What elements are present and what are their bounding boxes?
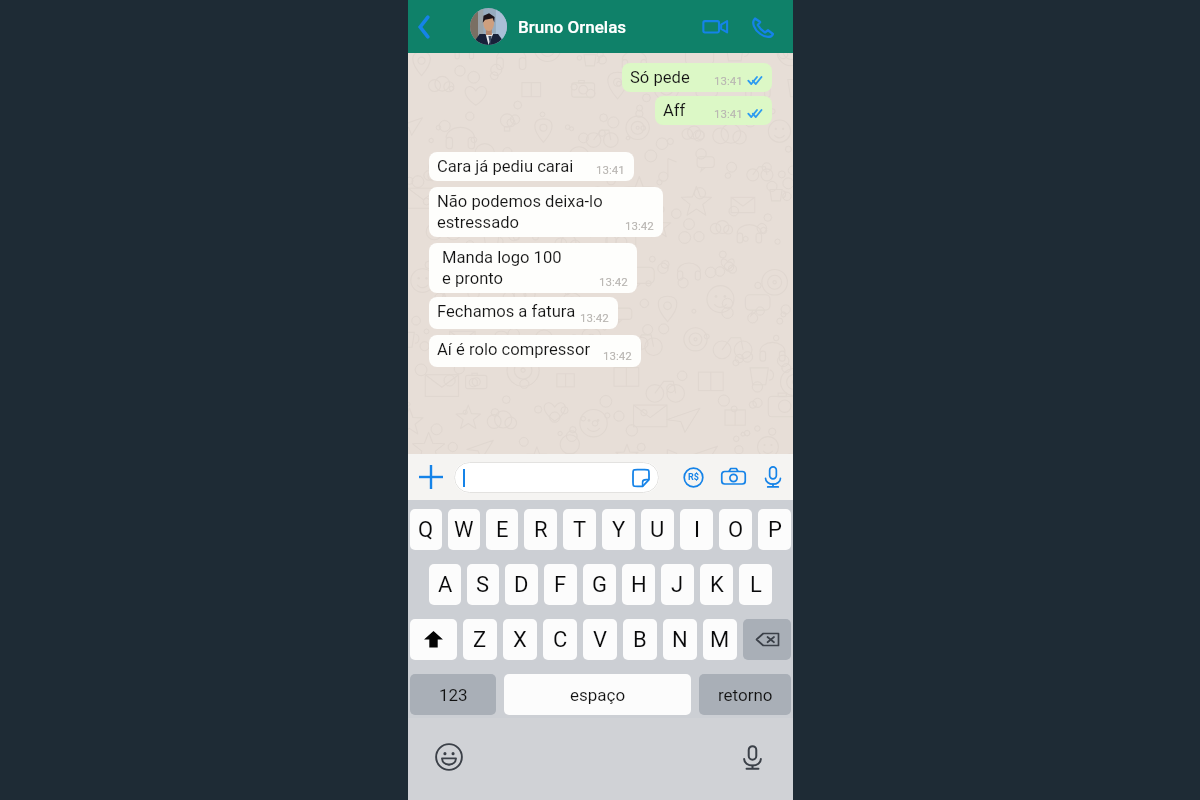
button[interactable]: Voice call (739, 0, 785, 53)
button[interactable]: Q (410, 509, 442, 550)
button[interactable]: V (583, 619, 617, 660)
button[interactable]: Z (463, 619, 497, 660)
button[interactable]: D (505, 564, 538, 605)
staticText: D (514, 572, 529, 598)
staticText: Cara já pediu carai (437, 157, 574, 176)
staticText: Y (612, 517, 626, 543)
button[interactable]: Aff (655, 96, 772, 125)
button[interactable]: L (739, 564, 772, 605)
staticText: Só pede (630, 68, 690, 87)
staticText: T (573, 517, 587, 543)
staticText: 13:42 (603, 340, 632, 353)
staticText: F (554, 572, 567, 598)
button[interactable]: N (663, 619, 697, 660)
staticText: C (553, 627, 568, 653)
button[interactable]: C (543, 619, 577, 660)
button[interactable]: espaço (504, 674, 691, 715)
button[interactable]: R (524, 509, 557, 550)
button[interactable]: 123 (410, 674, 496, 715)
button[interactable]: P (758, 509, 791, 550)
staticText: 13:41 (714, 68, 743, 81)
button[interactable]: Dictation (732, 737, 772, 777)
button[interactable]: B (623, 619, 657, 660)
staticText: W (454, 517, 474, 543)
staticText: Manda logo 100 e pronto (442, 248, 562, 288)
staticText: M (710, 627, 730, 653)
button[interactable]: Bruno Ornelas (470, 0, 691, 53)
button[interactable]: G (583, 564, 616, 605)
button[interactable]: U (641, 509, 674, 550)
button[interactable]: Attach (408, 454, 454, 500)
button[interactable]: I (680, 509, 713, 550)
staticText: U (650, 517, 665, 543)
staticText: espaço (570, 685, 626, 705)
button[interactable]: Backspace (743, 619, 791, 660)
button[interactable]: W (448, 509, 480, 550)
staticText: 123 (439, 685, 468, 705)
button[interactable]: F (544, 564, 577, 605)
staticText: retorno (718, 685, 773, 705)
staticText: E (496, 517, 509, 543)
staticText: Aí é rolo compressor (437, 340, 591, 359)
staticText: O (728, 517, 744, 543)
staticText: 13:42 (599, 275, 628, 288)
button[interactable]: Back (408, 0, 442, 53)
staticText: 13:41 (596, 157, 625, 170)
button[interactable]: Video call (691, 0, 739, 53)
button[interactable]: Emoji (429, 737, 469, 777)
staticText: V (593, 627, 608, 653)
staticText: R$ (688, 472, 699, 483)
staticText: Fechamos a fatura (437, 302, 576, 321)
staticText: N (672, 627, 688, 653)
button[interactable]: T (563, 509, 596, 550)
button[interactable]: Cara já pediu carai (429, 152, 634, 181)
staticText: A (438, 572, 453, 598)
button[interactable]: Fechamos a fatura (429, 297, 618, 329)
button[interactable]: retorno (699, 674, 791, 715)
staticText: J (671, 572, 684, 598)
staticText: L (750, 572, 762, 598)
button[interactable]: S (467, 564, 499, 605)
staticText: Q (418, 517, 434, 543)
staticText: P (768, 517, 782, 543)
button[interactable]: X (503, 619, 537, 660)
button[interactable]: Y (602, 509, 635, 550)
button[interactable]: Message input field (454, 462, 659, 493)
button[interactable]: A (429, 564, 461, 605)
button[interactable]: J (661, 564, 694, 605)
staticText: G (592, 572, 607, 598)
staticText: Z (473, 627, 487, 653)
staticText: 13:41 (596, 163, 625, 176)
staticText: 13:41 (714, 107, 743, 120)
button[interactable]: Camera (713, 454, 753, 500)
staticText: 13:41 (714, 101, 743, 114)
button[interactable]: O (719, 509, 752, 550)
button[interactable]: Voice message (753, 454, 793, 500)
staticText: H (631, 572, 647, 598)
staticText: 13:42 (603, 349, 632, 362)
button[interactable]: K (700, 564, 733, 605)
staticText: K (710, 572, 724, 598)
staticText: S (476, 572, 490, 598)
staticText: R (534, 517, 548, 543)
button[interactable]: M (703, 619, 737, 660)
button[interactable]: Só pede (622, 63, 772, 92)
staticText: X (513, 627, 527, 653)
button[interactable]: E (486, 509, 518, 550)
staticText: I (694, 517, 700, 543)
staticText: 13:42 (625, 219, 654, 232)
button[interactable]: Aí é rolo compressor (429, 335, 641, 367)
staticText: 13:42 (580, 302, 609, 315)
staticText: Não podemos deixa-lo estressado (437, 192, 603, 232)
button[interactable]: H (622, 564, 655, 605)
button[interactable]: Payment (673, 454, 713, 500)
button[interactable]: Não podemos deixa-lo estressado (429, 187, 663, 237)
staticText: 13:42 (580, 311, 609, 324)
staticText: 13:41 (714, 74, 743, 87)
button[interactable]: Manda logo 100 e pronto (429, 243, 637, 293)
staticText: Bruno Ornelas (518, 17, 627, 37)
staticText: B (633, 627, 647, 653)
button[interactable]: Shift (410, 619, 457, 660)
